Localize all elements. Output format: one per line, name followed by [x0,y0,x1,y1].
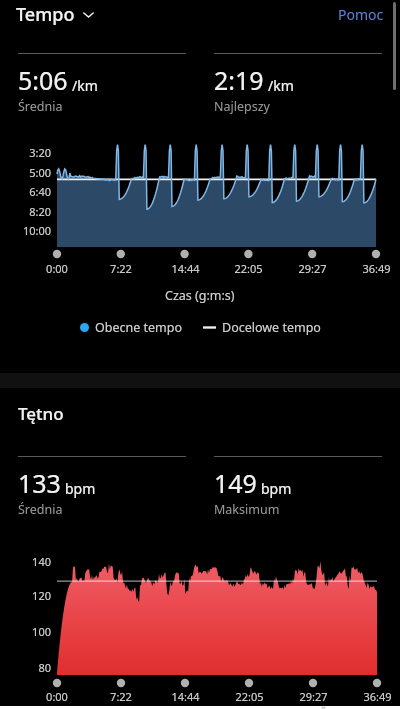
staticText: 149 [214,466,257,500]
staticText: 29:27 [299,689,328,704]
staticText: bpm [65,479,96,498]
staticText: /km [268,76,294,95]
staticText: 0:00 [46,261,68,276]
staticText: Średnia [18,501,63,518]
staticText: 29:27 [298,261,327,276]
staticText: 14:44 [171,689,200,704]
staticText: 22:05 [235,689,264,704]
staticText: Tempo [16,2,75,27]
staticText: Czas (g:m:s) [165,287,235,304]
staticText: Pomoc [338,5,384,24]
staticText: 5:00 [29,165,51,180]
staticText: 120 [32,588,51,603]
staticText: Maksimum [214,501,280,518]
staticText: bpm [261,479,292,498]
staticText: 10:00 [22,223,51,238]
staticText: Docelowe tempo [222,319,321,336]
staticText: 6:40 [29,184,51,199]
staticText: 14:44 [171,261,200,276]
staticText: 0:00 [46,689,68,704]
staticText: 36:49 [363,689,392,704]
staticText: Średnia [18,98,63,115]
staticText: Obecne tempo [95,319,183,336]
staticText: 2:19 [214,63,264,97]
button[interactable]: Pomoc [336,3,386,26]
staticText: 36:49 [362,261,391,276]
staticText: /km [72,76,98,95]
staticText: 7:22 [110,261,132,276]
staticText: 22:05 [234,261,263,276]
other: Change metric [82,8,95,21]
staticText: 3:20 [29,145,51,160]
staticText: Tętno [18,402,64,425]
button[interactable]: Tempo [16,2,99,27]
staticText: 7:22 [110,689,132,704]
staticText: 5:06 [18,63,68,97]
staticText: 80 [38,660,51,675]
staticText: Najlepszy [214,98,270,115]
staticText: 8:20 [29,204,51,219]
staticText: 133 [18,466,61,500]
staticText: 100 [32,624,51,639]
staticText: 140 [32,554,51,569]
